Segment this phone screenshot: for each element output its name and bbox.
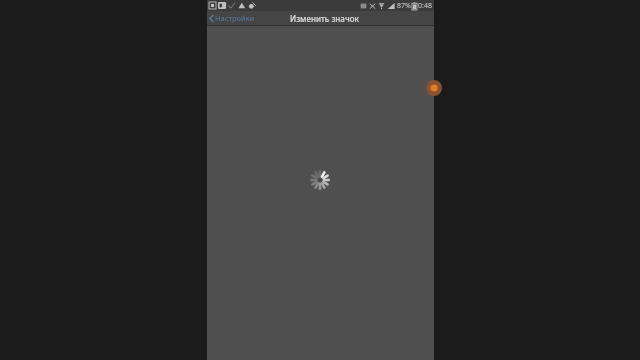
- staticText: 0:48: [418, 1, 432, 11]
- other: Back: [209, 14, 214, 23]
- staticText: 87%: [397, 1, 411, 11]
- staticText: Изменить значок: [290, 13, 359, 24]
- button[interactable]: Back: [207, 11, 259, 25]
- staticText: Настройки: [215, 13, 255, 23]
